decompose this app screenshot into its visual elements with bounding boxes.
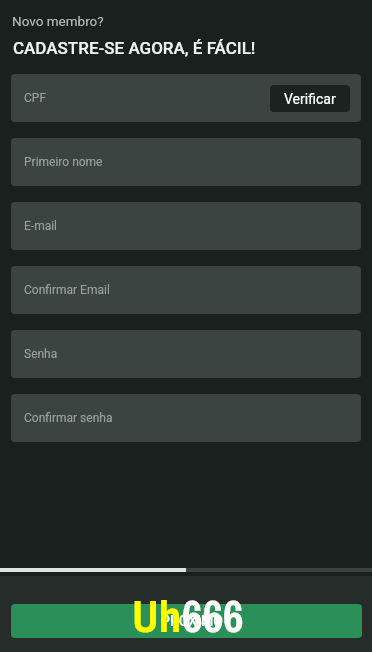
staticText: Primeiro nome <box>24 155 103 169</box>
button[interactable]: CPF <box>11 74 361 122</box>
button[interactable]: Confirmar senha <box>11 394 361 442</box>
staticText: CPF <box>24 91 47 105</box>
staticText: Verificar <box>284 91 336 107</box>
staticText: E-mail <box>24 219 58 233</box>
button[interactable]: Confirmar Email <box>11 266 361 314</box>
button[interactable]: Verificar <box>270 85 350 112</box>
staticText: Confirmar senha <box>24 411 113 425</box>
staticText: PRÓXIMO <box>161 613 223 629</box>
staticText: 666 <box>182 585 244 646</box>
button[interactable]: E-mail <box>11 202 361 250</box>
staticText: Senha <box>24 347 58 361</box>
staticText: Uh <box>132 585 182 646</box>
button[interactable]: Senha <box>11 330 361 378</box>
button[interactable]: PRÓXIMO <box>11 604 362 638</box>
button[interactable]: Primeiro nome <box>11 138 361 186</box>
staticText: CADASTRE-SE AGORA, É FÁCIL! <box>13 38 256 58</box>
staticText: Novo membro? <box>12 13 104 29</box>
staticText: Confirmar Email <box>24 283 110 297</box>
